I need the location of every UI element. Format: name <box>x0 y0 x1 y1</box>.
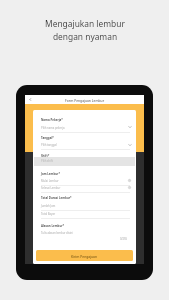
staticText: Form Pengajuan Lembur <box>65 98 105 102</box>
button[interactable]: Back <box>28 97 33 102</box>
staticText: Nama Pekerja* <box>41 118 63 122</box>
staticText: Selesai Lembur <box>41 186 61 190</box>
staticText: Mulai Lembur <box>41 179 59 183</box>
button[interactable]: Kirim Pengajuan <box>36 250 133 261</box>
staticText: Jam Lembur* <box>41 172 60 176</box>
staticText: Shift* <box>41 154 50 158</box>
staticText: Tulis alasan lembur disini <box>41 231 73 235</box>
staticText: Pilih nama pekerja <box>41 126 65 130</box>
staticText: Jumlah Jam <box>41 204 56 208</box>
staticText: 0/255 <box>120 237 128 241</box>
staticText: Alasan Lembur* <box>41 224 65 228</box>
staticText: Total Durasi Lembur* <box>41 196 72 200</box>
staticText: Total Bayar <box>41 212 56 216</box>
staticText: Tanggal* <box>41 136 54 140</box>
staticText: Mengajukan lembur dengan nyaman <box>45 18 125 43</box>
staticText: Pilih tanggal <box>41 143 57 147</box>
staticText: Kirim Pengajuan <box>71 254 98 258</box>
staticText: Pilih shift <box>41 159 53 163</box>
